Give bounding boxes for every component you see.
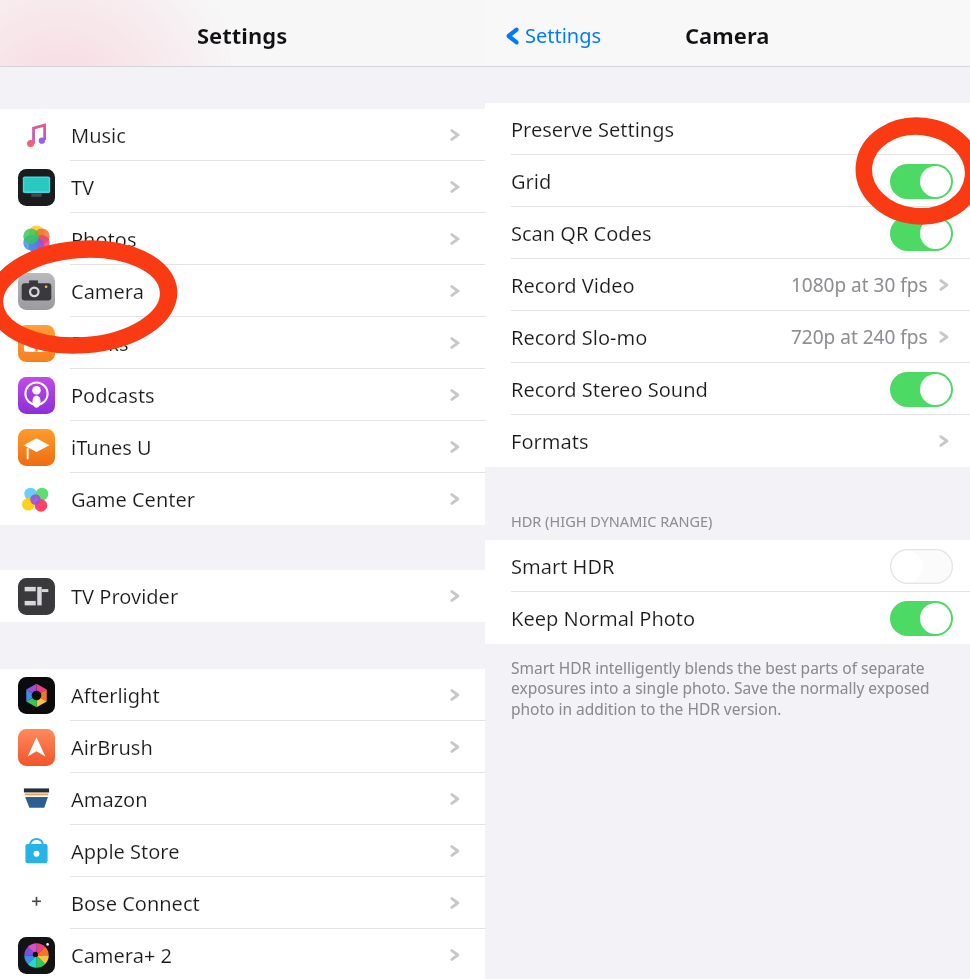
staticText: Afterlight — [71, 682, 160, 709]
staticText: Podcasts — [71, 382, 155, 409]
button[interactable]: Smart HDR — [485, 540, 970, 592]
staticText: TV — [71, 174, 95, 201]
button[interactable]: Photos — [0, 213, 485, 265]
button[interactable]: Scan QR Codes — [485, 207, 970, 259]
staticText: Smart HDR — [511, 553, 615, 580]
button[interactable]: Record Stereo Sound — [485, 363, 970, 415]
staticText: Record Stereo Sound — [511, 376, 708, 403]
button[interactable]: Grid — [890, 164, 953, 199]
button[interactable]: Music — [0, 109, 485, 161]
staticText: Amazon — [71, 786, 148, 813]
staticText: Camera+ 2 — [71, 942, 172, 969]
button[interactable]: Smart HDR — [890, 549, 953, 584]
staticText: Formats — [511, 428, 589, 455]
button[interactable]: TV Provider — [0, 570, 485, 622]
button[interactable]: Bose Connect — [0, 877, 485, 929]
staticText: 1080p at 30 fps — [791, 272, 928, 298]
button[interactable]: Afterlight — [0, 669, 485, 721]
staticText: TV Provider — [71, 583, 179, 610]
staticText: Preserve Settings — [511, 116, 675, 143]
staticText: Record Slo-mo — [511, 324, 648, 351]
button[interactable]: Record Stereo Sound — [890, 372, 953, 407]
staticText: Record Video — [511, 272, 635, 299]
button[interactable]: Record Slo-mo — [485, 311, 970, 363]
button[interactable]: Preserve Settings — [485, 103, 970, 155]
staticText: HDR (HIGH DYNAMIC RANGE) — [511, 511, 713, 531]
staticText: Keep Normal Photo — [511, 605, 696, 632]
button[interactable]: Books — [0, 317, 485, 369]
staticText: Music — [71, 122, 126, 149]
button[interactable]: Podcasts — [0, 369, 485, 421]
button[interactable]: Keep Normal Photo — [890, 601, 953, 636]
staticText: Game Center — [71, 486, 195, 513]
button[interactable]: TV — [0, 161, 485, 213]
button[interactable]: Keep Normal Photo — [485, 592, 970, 644]
staticText: Camera — [685, 20, 770, 50]
staticText: iTunes U — [71, 434, 152, 461]
button[interactable]: iTunes U — [0, 421, 485, 473]
staticText: AirBrush — [71, 734, 153, 761]
button[interactable]: Settings — [503, 22, 602, 49]
staticText: Apple Store — [71, 838, 180, 865]
button[interactable]: Formats — [485, 415, 970, 467]
staticText: Photos — [71, 226, 137, 253]
staticText: Settings — [525, 22, 602, 49]
button[interactable]: Camera — [0, 265, 485, 317]
button[interactable]: Game Center — [0, 473, 485, 525]
staticText: 720p at 240 fps — [791, 324, 928, 350]
staticText: Smart HDR intelligently blends the best … — [511, 657, 950, 720]
button[interactable]: Grid — [485, 155, 970, 207]
button[interactable]: Amazon — [0, 773, 485, 825]
staticText: Bose Connect — [71, 890, 200, 917]
staticText: Camera — [71, 278, 144, 305]
button[interactable]: Scan QR Codes — [890, 216, 953, 251]
staticText: Books — [71, 330, 129, 357]
staticText: Scan QR Codes — [511, 220, 652, 247]
button[interactable]: Apple Store — [0, 825, 485, 877]
staticText: Settings — [197, 20, 288, 50]
button[interactable]: Record Video — [485, 259, 970, 311]
button[interactable]: Camera+ 2 — [0, 929, 485, 979]
staticText: Grid — [511, 168, 552, 195]
button[interactable]: AirBrush — [0, 721, 485, 773]
